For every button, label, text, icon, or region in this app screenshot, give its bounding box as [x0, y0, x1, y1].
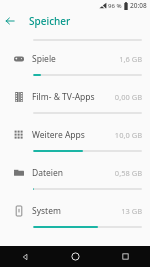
button[interactable]: Film- & TV-Apps [0, 81, 150, 119]
staticText: System [32, 205, 61, 217]
staticText: 1,6 GB [119, 54, 142, 64]
button[interactable]: Zurück [0, 11, 20, 31]
staticText: Dateien [32, 167, 64, 179]
button[interactable]: Zurück [0, 246, 50, 267]
button[interactable]: System [0, 195, 150, 233]
staticText: Film- & TV-Apps [32, 91, 95, 103]
staticText: Weitere Apps [32, 129, 85, 141]
staticText: Spiele [32, 53, 56, 65]
button[interactable]: Weitere Apps [0, 119, 150, 157]
button[interactable]: Dateien [0, 157, 150, 195]
button[interactable]: Startseite [50, 246, 100, 267]
staticText: Speicher [29, 14, 71, 28]
staticText: 20:08 [130, 1, 147, 10]
staticText: 96 % [108, 2, 122, 10]
staticText: 0,00 GB [114, 92, 142, 102]
staticText: 13 GB [121, 206, 142, 216]
staticText: 10,0 GB [114, 130, 142, 140]
staticText: 0,58 GB [114, 168, 142, 178]
button[interactable]: Spiele [0, 43, 150, 81]
button[interactable]: Übersicht [100, 246, 150, 267]
